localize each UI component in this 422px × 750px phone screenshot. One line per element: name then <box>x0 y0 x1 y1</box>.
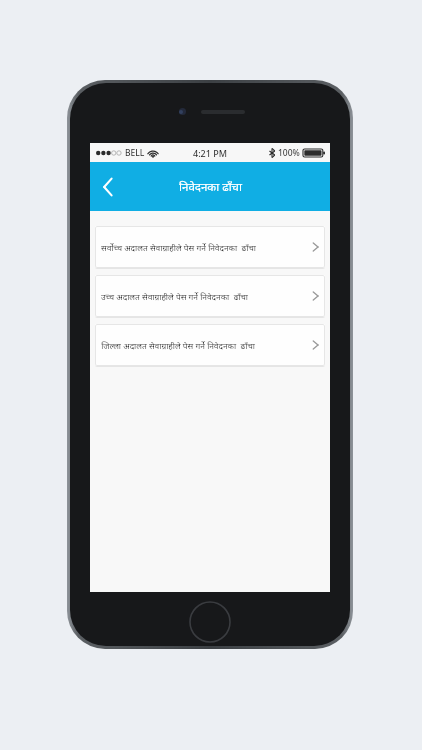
button[interactable]: जिल्ला अदालत सेवाग्राहीले पेस गर्ने निवे… <box>95 324 325 366</box>
staticText: उच्च अदालत सेवाग्राहीले पेस गर्ने निवेदन… <box>101 291 309 302</box>
staticText: जिल्ला अदालत सेवाग्राहीले पेस गर्ने निवे… <box>101 340 309 351</box>
button[interactable]: Back <box>90 165 126 209</box>
staticText: सर्वोच्च अदालत सेवाग्राहीले पेस गर्ने नि… <box>101 242 309 253</box>
button[interactable]: सर्वोच्च अदालत सेवाग्राहीले पेस गर्ने नि… <box>95 226 325 268</box>
staticText: BELL <box>125 147 145 159</box>
staticText: 4:21 PM <box>193 147 227 159</box>
staticText: निवेदनका ढाँचा <box>179 179 242 195</box>
staticText: 100% <box>278 147 300 159</box>
button[interactable]: उच्च अदालत सेवाग्राहीले पेस गर्ने निवेदन… <box>95 275 325 317</box>
